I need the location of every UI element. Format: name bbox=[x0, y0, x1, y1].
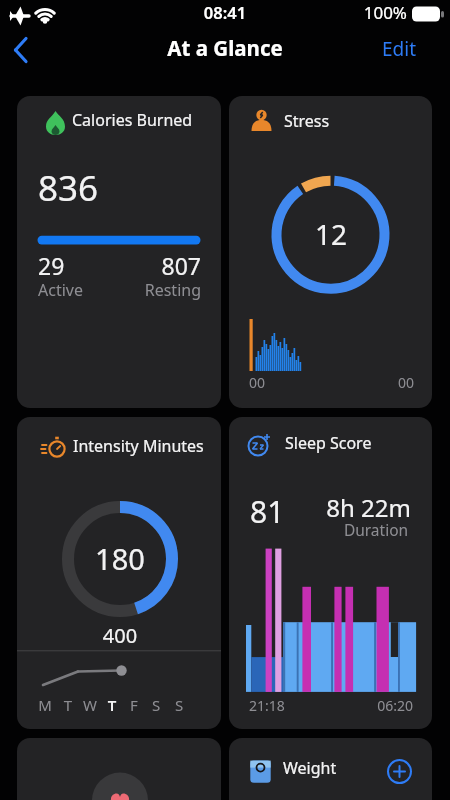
staticText: 00 bbox=[249, 373, 266, 392]
staticText: T bbox=[58, 695, 78, 715]
staticText: 08:41 bbox=[196, 1, 254, 23]
staticText: Edit bbox=[366, 36, 416, 62]
staticText: Weight bbox=[283, 757, 337, 779]
button[interactable]: Intensity Minutes bbox=[17, 417, 221, 729]
staticText: Sleep Score bbox=[285, 432, 372, 454]
button[interactable]: Weight bbox=[229, 738, 432, 800]
staticText: 180 bbox=[85, 539, 155, 578]
staticText: Duration bbox=[336, 519, 416, 540]
staticText: Calories Burned bbox=[72, 109, 193, 131]
staticText: At a Glance bbox=[125, 34, 325, 62]
staticText: 21:18 bbox=[249, 696, 285, 715]
button[interactable] bbox=[386, 758, 413, 785]
staticText: 836 bbox=[38, 164, 99, 212]
staticText: 81 bbox=[250, 491, 285, 532]
staticText: 100% bbox=[350, 1, 407, 24]
staticText: F bbox=[124, 695, 144, 715]
staticText: Active bbox=[38, 279, 83, 301]
staticText: Stress bbox=[284, 110, 330, 132]
staticText: 807 bbox=[77, 250, 201, 281]
button[interactable]: Calories Burned bbox=[17, 96, 221, 408]
button[interactable] bbox=[8, 36, 42, 66]
staticText: Resting bbox=[77, 279, 201, 301]
staticText: 8h 22m bbox=[289, 491, 411, 524]
staticText: 12 bbox=[301, 215, 361, 253]
staticText: 06:20 bbox=[349, 696, 413, 715]
staticText: Intensity Minutes bbox=[73, 435, 204, 457]
staticText: 00 bbox=[359, 373, 414, 392]
staticText: 29 bbox=[38, 250, 65, 281]
button[interactable] bbox=[17, 738, 221, 800]
staticText: T bbox=[102, 695, 122, 715]
button[interactable]: Sleep Score bbox=[229, 417, 432, 729]
staticText: S bbox=[169, 695, 189, 715]
staticText: S bbox=[146, 695, 166, 715]
button[interactable]: Edit bbox=[366, 38, 418, 66]
staticText: W bbox=[80, 695, 100, 715]
button[interactable]: Stress bbox=[229, 96, 432, 408]
staticText: M bbox=[35, 695, 55, 715]
staticText: 400 bbox=[95, 622, 145, 649]
